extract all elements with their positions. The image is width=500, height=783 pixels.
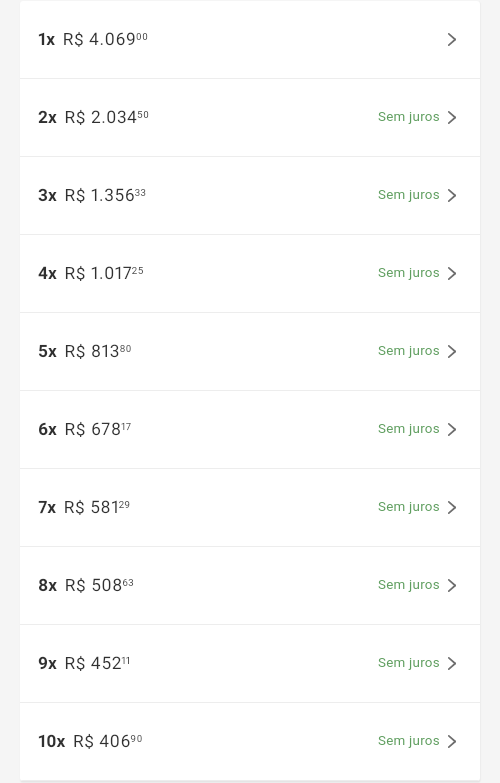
- staticText: Sem juros: [378, 187, 440, 203]
- other: Selecionar parcelamento: [448, 423, 456, 436]
- other: Selecionar parcelamento: [448, 189, 456, 202]
- button[interactable]: 2x R$ 2.03450: [20, 79, 480, 157]
- staticText: Sem juros: [378, 343, 440, 359]
- other: Selecionar parcelamento: [448, 345, 456, 358]
- button[interactable]: 7x R$ 58129: [20, 469, 480, 547]
- staticText: Sem juros: [378, 655, 440, 671]
- staticText: 1x R$ 4.06900: [38, 29, 148, 49]
- staticText: 9x R$ 45211: [38, 653, 131, 673]
- staticText: Sem juros: [378, 265, 440, 281]
- staticText: Sem juros: [378, 733, 440, 749]
- button[interactable]: 3x R$ 1.35633: [20, 157, 480, 235]
- staticText: 8x R$ 50863: [38, 575, 135, 595]
- staticText: 3x R$ 1.35633: [38, 185, 147, 205]
- button[interactable]: 1x R$ 4.06900: [20, 1, 480, 79]
- other: Selecionar parcelamento: [448, 735, 456, 748]
- staticText: Sem juros: [378, 499, 440, 515]
- staticText: 6x R$ 67817: [38, 419, 132, 439]
- button[interactable]: 6x R$ 67817: [20, 391, 480, 469]
- other: Selecionar parcelamento: [448, 111, 456, 124]
- other: Selecionar parcelamento: [448, 501, 456, 514]
- staticText: 5x R$ 81380: [38, 341, 132, 361]
- staticText: Sem juros: [378, 577, 440, 593]
- button[interactable]: 4x R$ 1.01725: [20, 235, 480, 313]
- staticText: Sem juros: [378, 109, 440, 125]
- button[interactable]: 8x R$ 50863: [20, 547, 480, 625]
- staticText: 4x R$ 1.01725: [38, 263, 144, 283]
- staticText: Sem juros: [378, 421, 440, 437]
- button[interactable]: 10x R$ 40690: [20, 703, 480, 781]
- staticText: 7x R$ 58129: [38, 497, 131, 517]
- button[interactable]: 5x R$ 81380: [20, 313, 480, 391]
- other: Selecionar parcelamento: [448, 579, 456, 592]
- staticText: 2x R$ 2.03450: [38, 107, 150, 127]
- staticText: 10x R$ 40690: [38, 731, 143, 751]
- other: Selecionar parcelamento: [448, 657, 456, 670]
- button[interactable]: 9x R$ 45211: [20, 625, 480, 703]
- other: Selecionar parcelamento: [448, 33, 456, 46]
- other: Selecionar parcelamento: [448, 267, 456, 280]
